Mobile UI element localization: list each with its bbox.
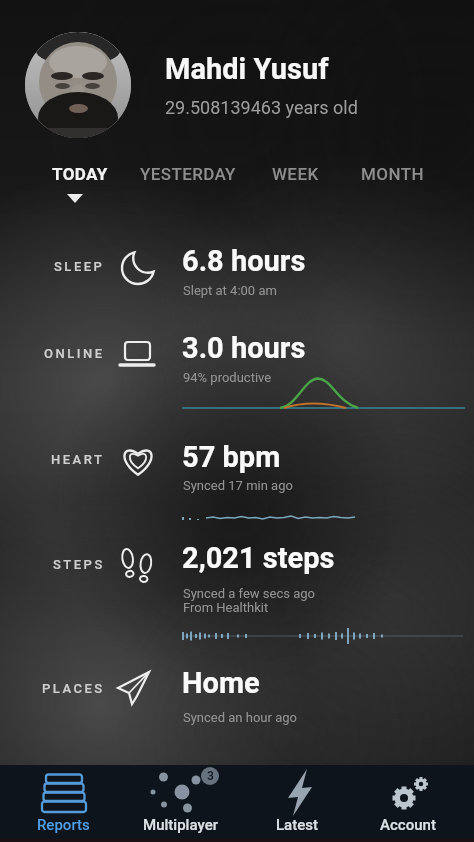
button[interactable] xyxy=(42,160,118,192)
button[interactable]: Reports xyxy=(7,765,119,839)
button[interactable] xyxy=(0,240,474,315)
staticText: 6.8 hours xyxy=(182,244,306,278)
button[interactable] xyxy=(0,325,474,420)
staticText: SLEEP xyxy=(54,259,105,274)
staticText: Synced an hour ago xyxy=(183,710,297,725)
staticText: Reports xyxy=(37,816,90,834)
staticText: From Healthkit xyxy=(183,600,269,615)
staticText: ONLINE xyxy=(44,346,105,361)
button[interactable] xyxy=(25,32,131,138)
button[interactable] xyxy=(130,160,242,192)
staticText: 29.508139463 years old xyxy=(165,97,358,118)
staticText: 94% productive xyxy=(183,370,272,385)
button[interactable]: Latest xyxy=(241,765,353,839)
staticText: Home xyxy=(182,666,260,700)
staticText: Account xyxy=(380,816,436,834)
staticText: Synced a few secs ago xyxy=(183,586,315,601)
button[interactable] xyxy=(262,160,332,192)
button[interactable] xyxy=(0,538,474,650)
button[interactable]: Account xyxy=(352,765,464,839)
staticText: Multiplayer xyxy=(143,816,218,834)
staticText: 3 xyxy=(207,769,214,783)
staticText: Slept at 4:00 am xyxy=(183,283,277,298)
staticText: 57 bpm xyxy=(182,440,281,474)
staticText: STEPS xyxy=(53,557,105,572)
staticText: Mahdi Yusuf xyxy=(165,52,329,86)
button[interactable]: Multiplayer xyxy=(124,765,236,839)
staticText: PLACES xyxy=(42,681,105,696)
staticText: HEART xyxy=(51,452,105,467)
button[interactable] xyxy=(0,432,474,532)
staticText: WEEK xyxy=(272,164,319,184)
staticText: YESTERDAY xyxy=(140,164,236,184)
button[interactable] xyxy=(0,660,474,730)
staticText: MONTH xyxy=(361,164,424,184)
staticText: 2,021 steps xyxy=(182,541,335,575)
button[interactable] xyxy=(351,160,431,192)
staticText: TODAY xyxy=(52,164,108,184)
staticText: Synced 17 min ago xyxy=(183,478,293,493)
staticText: Latest xyxy=(276,816,319,834)
staticText: 3.0 hours xyxy=(182,331,306,365)
